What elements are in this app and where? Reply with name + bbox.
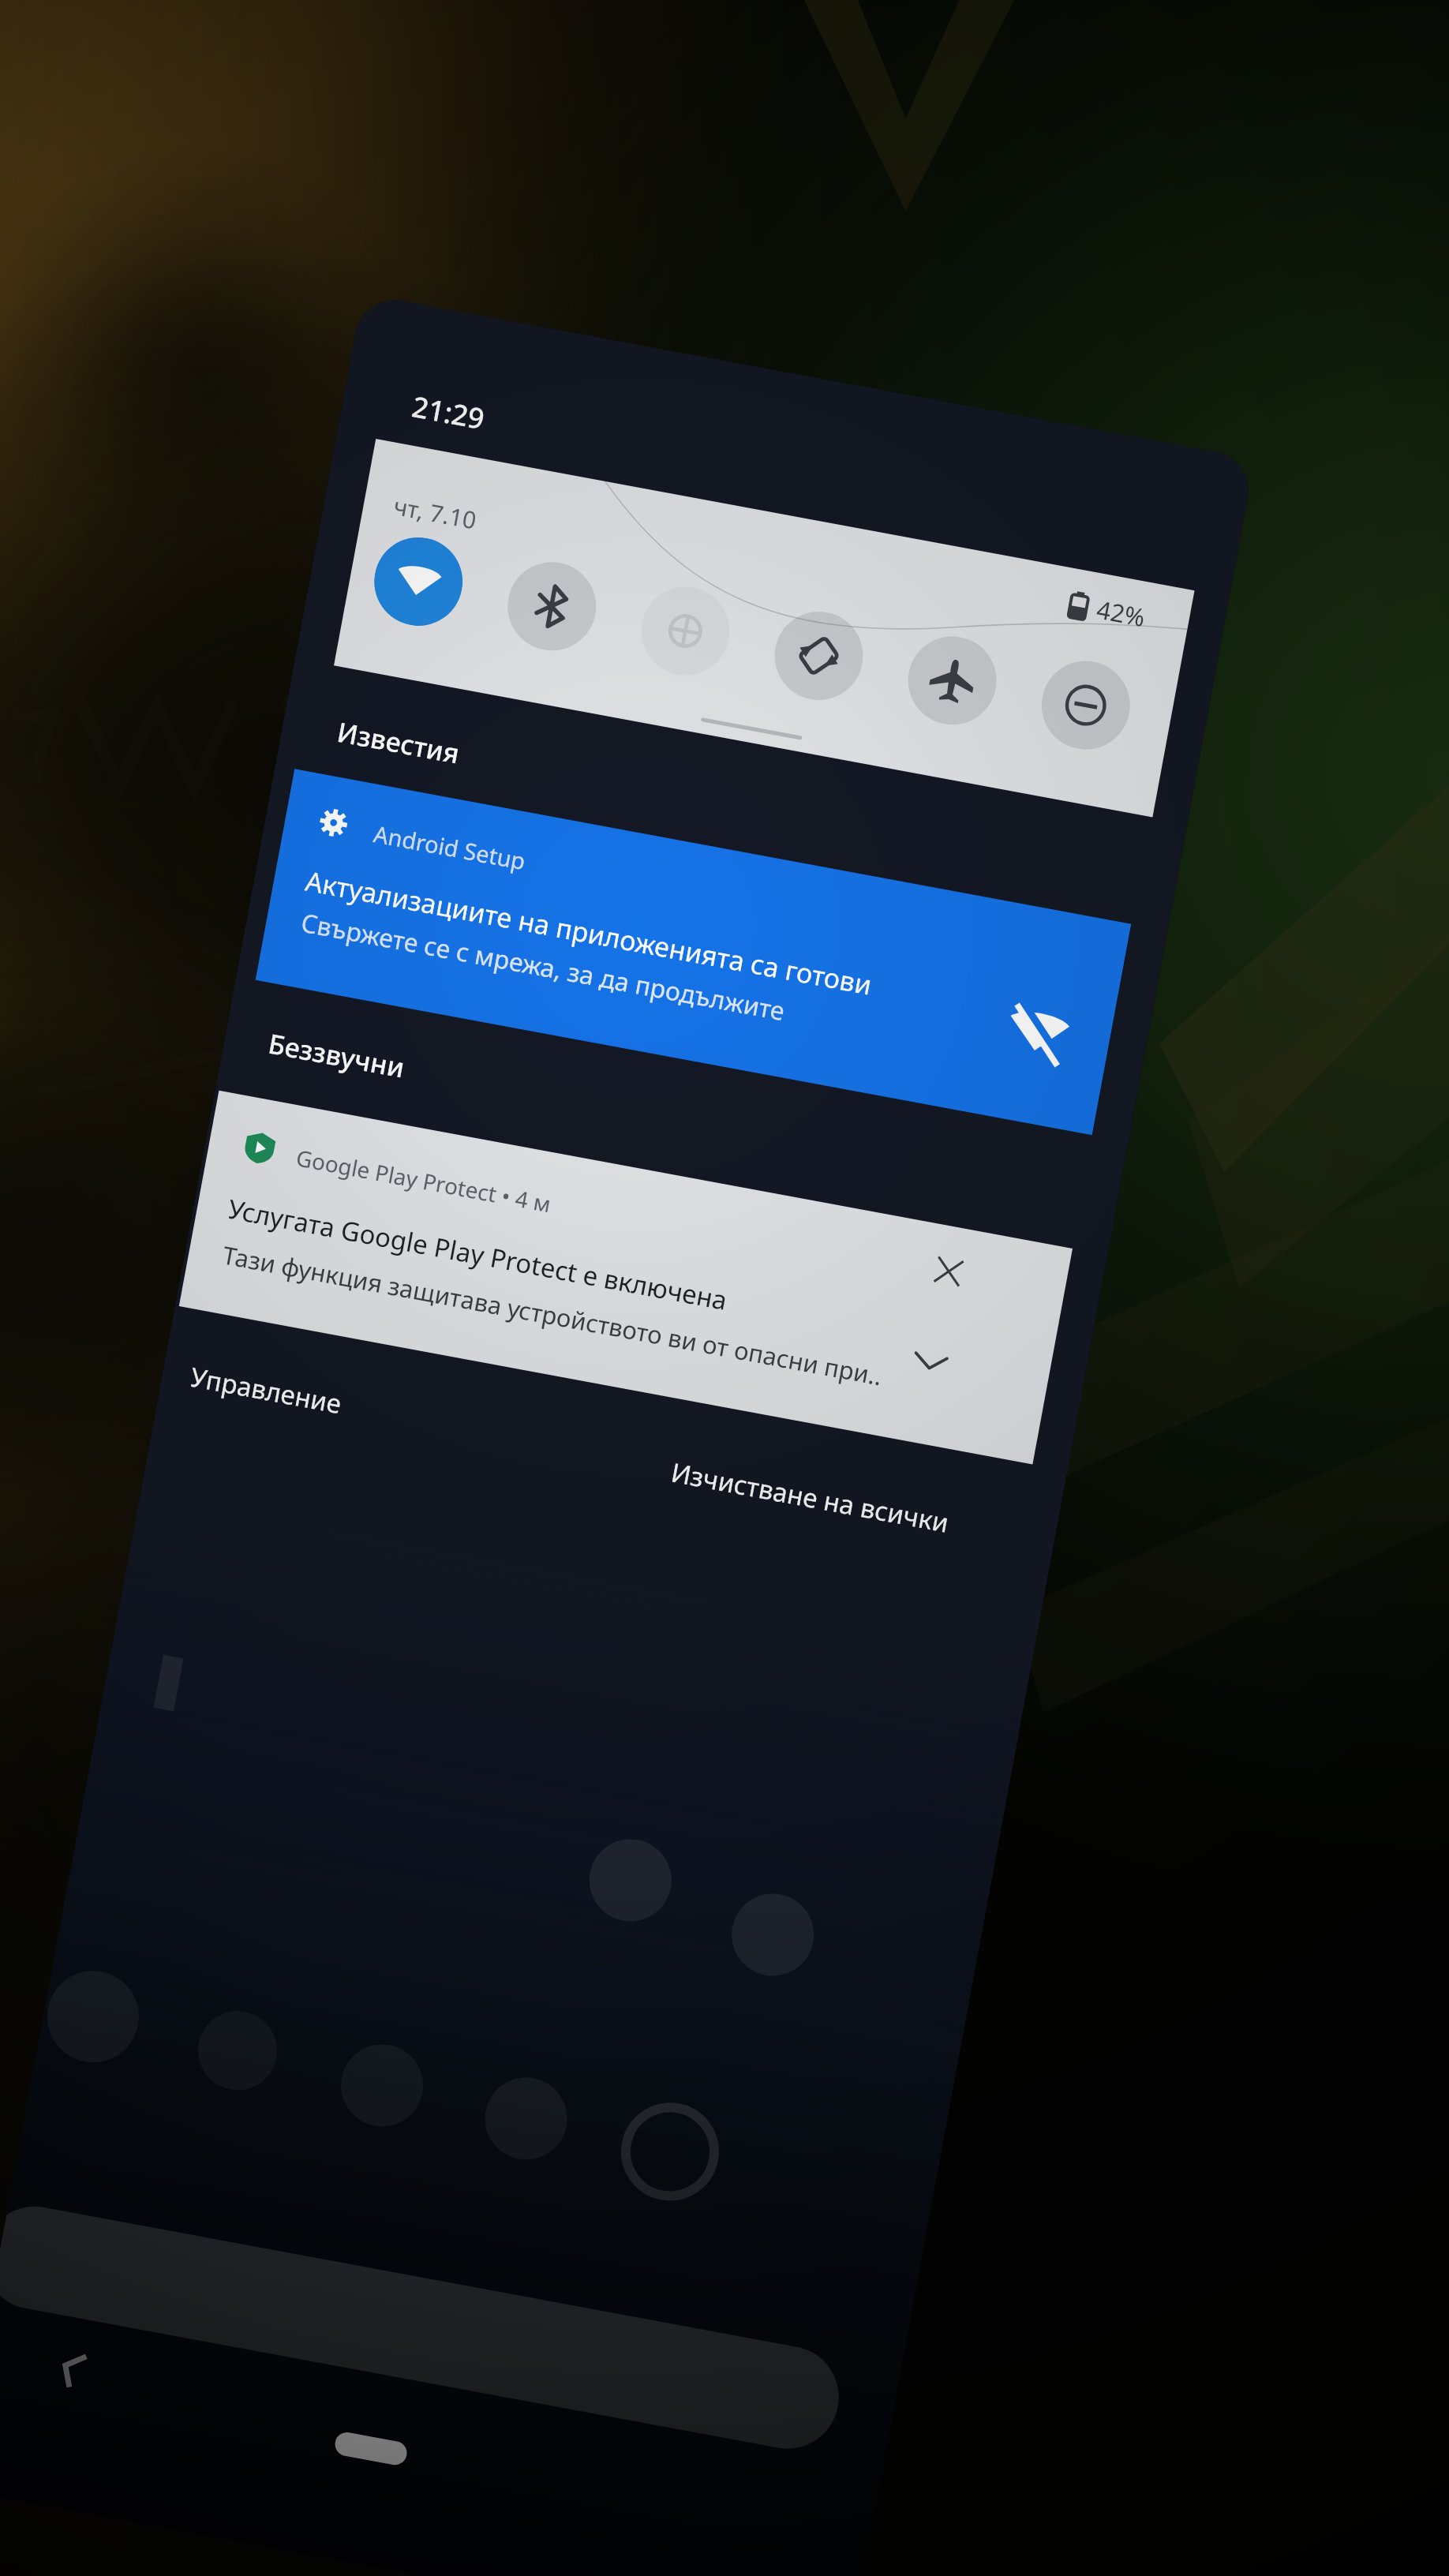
staticText: Беззвучни xyxy=(265,1025,408,1086)
button[interactable]: Android Setup xyxy=(255,769,1131,1135)
staticText: Услугата Google Play Protect е включена xyxy=(225,1191,731,1318)
staticText: Тази функция защитава устройството ви от… xyxy=(220,1238,885,1392)
button[interactable]: Do not disturb xyxy=(1034,654,1137,757)
staticText: Google Play Protect • 4 м xyxy=(294,1142,554,1219)
button[interactable]: Управление xyxy=(188,1359,345,1422)
staticText: Свържете се с мрежа, за да продължите xyxy=(298,905,788,1029)
staticText: 42% xyxy=(1094,592,1148,634)
button[interactable]: Wi-Fi xyxy=(367,530,470,633)
staticText: Android Setup xyxy=(371,818,528,876)
button[interactable]: Изчистване на всички xyxy=(668,1454,952,1540)
button[interactable]: Expand notification xyxy=(908,1338,954,1384)
button[interactable]: Airplane mode xyxy=(901,629,1004,732)
button[interactable]: Google Play Protect • 4 м xyxy=(179,1090,1073,1464)
staticText: Известия xyxy=(334,713,463,772)
staticText: 21:29 xyxy=(409,387,488,438)
button[interactable]: Bluetooth xyxy=(500,555,603,658)
button[interactable]: Dismiss notification xyxy=(929,1252,968,1291)
staticText: чт, 7.10 xyxy=(391,489,479,536)
button[interactable]: Mobile data xyxy=(634,580,737,683)
staticText: Актуализациите на приложенията са готови xyxy=(303,862,875,1003)
button[interactable]: Auto-rotate xyxy=(767,604,870,707)
